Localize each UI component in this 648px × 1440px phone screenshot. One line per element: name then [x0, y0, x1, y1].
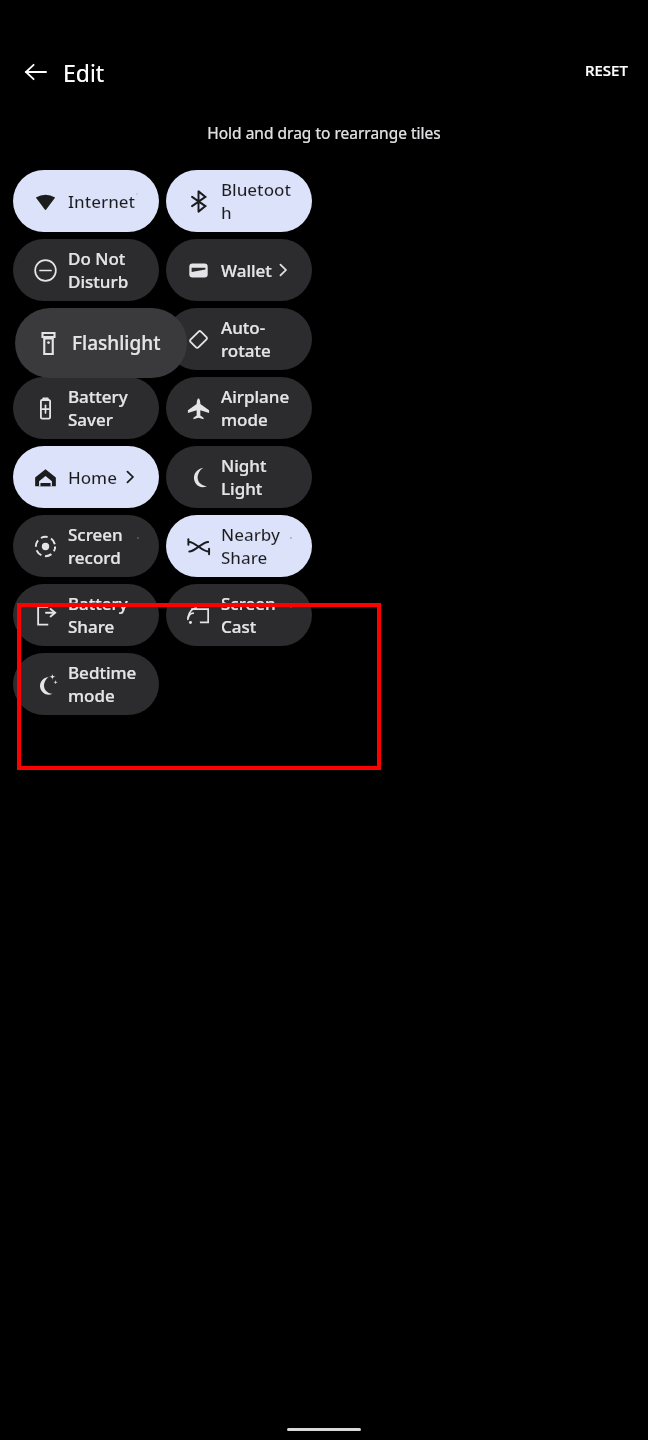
staticText: Screen Cast	[221, 592, 291, 638]
button[interactable]: Bedtime mode	[13, 653, 159, 715]
button[interactable]: Flashlight	[15, 308, 187, 378]
staticText: Flashlight	[72, 330, 161, 356]
button[interactable]: Screen record	[13, 515, 159, 577]
button[interactable]: Wallet	[166, 239, 312, 301]
staticText: Edit	[63, 57, 105, 88]
button[interactable]: Home	[13, 446, 159, 508]
button[interactable]: Screen Cast	[166, 584, 312, 646]
staticText: Battery Share	[68, 592, 138, 638]
staticText: Airplane mode	[221, 385, 291, 431]
button[interactable]: Bluetooth	[166, 170, 312, 232]
button[interactable]: Do Not Disturb	[13, 239, 159, 301]
staticText: Night Light	[221, 454, 291, 500]
button[interactable]: RESET	[577, 55, 636, 85]
button[interactable]: Night Light	[166, 446, 312, 508]
button[interactable]: Nearby Share	[166, 515, 312, 577]
staticText: Hold and drag to rearrange tiles	[0, 122, 648, 143]
button[interactable]: Internet	[13, 170, 159, 232]
staticText: Screen record	[68, 523, 138, 569]
button[interactable]: Battery Share	[13, 584, 159, 646]
staticText: Internet	[68, 190, 136, 213]
staticText: Bedtime mode	[68, 661, 138, 707]
staticText: Nearby Share	[221, 523, 291, 569]
staticText: Do Not Disturb	[68, 247, 138, 293]
button[interactable]: Back	[14, 50, 58, 94]
staticText: Auto-rotate	[221, 316, 291, 362]
button[interactable]: Battery Saver	[13, 377, 159, 439]
staticText: RESET	[585, 60, 628, 80]
staticText: Home	[68, 466, 117, 489]
staticText: Battery Saver	[68, 385, 138, 431]
button[interactable]: Auto-rotate	[166, 308, 312, 370]
staticText: Bluetooth	[221, 178, 291, 224]
button[interactable]: Airplane mode	[166, 377, 312, 439]
staticText: Wallet	[221, 259, 272, 282]
